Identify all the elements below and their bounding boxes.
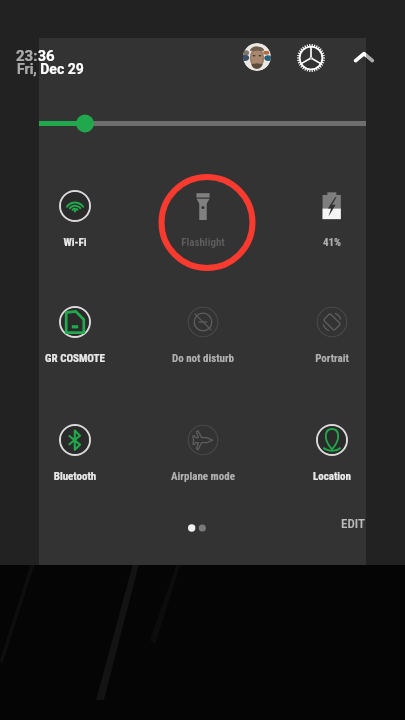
button[interactable]: Wi-Fi (13, 184, 137, 244)
button[interactable]: Bluetooth (13, 418, 137, 478)
staticText: Location (270, 470, 394, 483)
button[interactable]: User profile (243, 43, 271, 71)
staticText: EDIT (341, 516, 365, 531)
staticText: Airplane mode (141, 470, 265, 483)
staticText: 41% (270, 236, 394, 249)
button[interactable]: Collapse panel (348, 42, 380, 74)
staticText: Flashlight (141, 236, 265, 249)
staticText: 23:36 (16, 47, 55, 65)
staticText: Portrait (270, 352, 394, 365)
staticText: Fri, Dec 29 (17, 61, 84, 77)
button[interactable]: 41% (270, 184, 394, 244)
staticText: Bluetooth (13, 470, 137, 483)
button[interactable]: Settings (295, 42, 327, 74)
button[interactable]: Brightness (39, 113, 366, 134)
button[interactable]: 23:36 (16, 44, 106, 82)
button[interactable]: Do not disturb (141, 300, 265, 360)
button[interactable]: Portrait (270, 300, 394, 360)
staticText: Do not disturb (141, 352, 265, 365)
button[interactable]: Location (270, 418, 394, 478)
button[interactable]: Airplane mode (141, 418, 265, 478)
staticText: Wi-Fi (13, 236, 137, 249)
button[interactable]: Flashlight (141, 184, 265, 244)
button[interactable]: EDIT (341, 516, 365, 531)
button[interactable]: GR COSMOTE (13, 300, 137, 360)
button[interactable]: Page indicator (183, 520, 211, 536)
staticText: GR COSMOTE (13, 352, 137, 365)
